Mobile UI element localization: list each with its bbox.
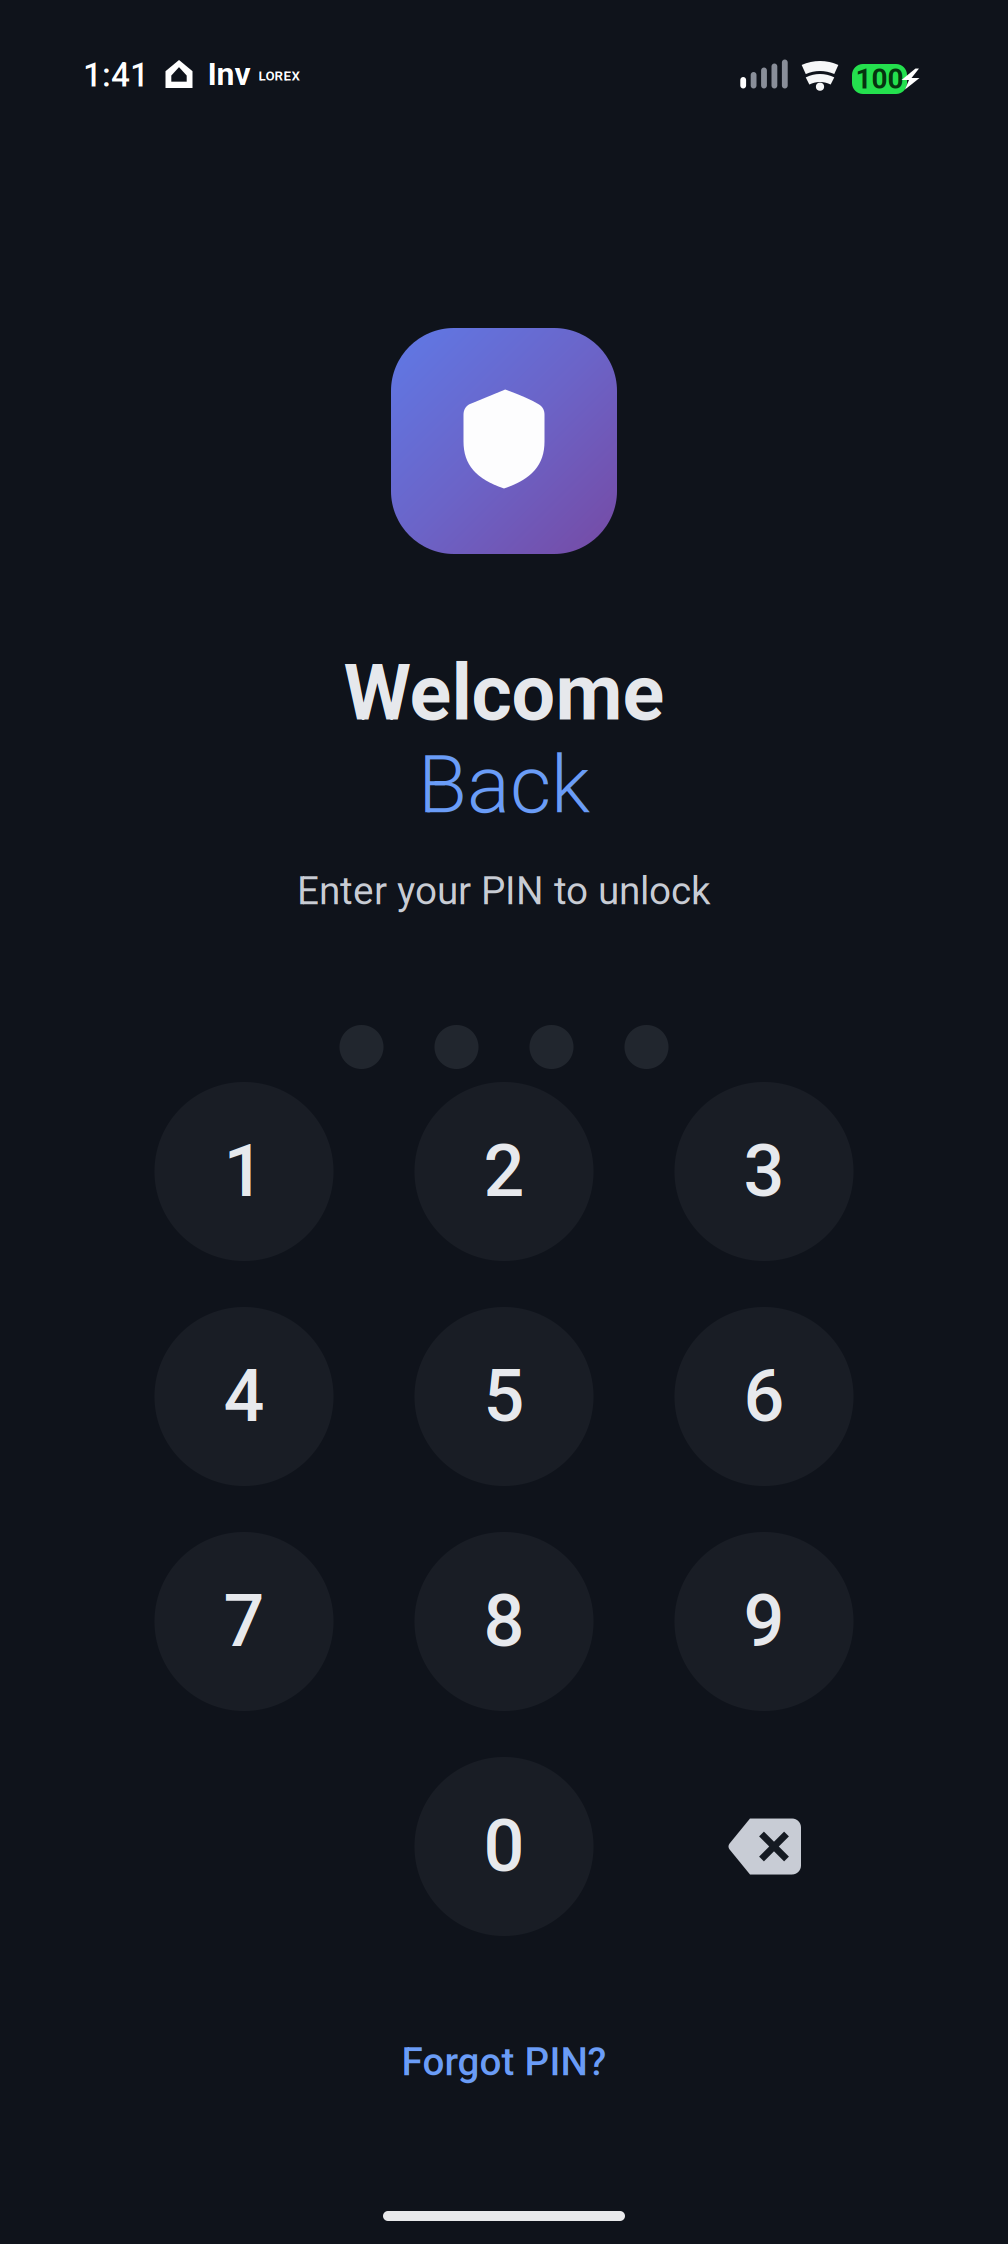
button[interactable]: 5 [414,1307,593,1486]
button[interactable]: 0 [414,1757,593,1936]
staticText: 2 [483,1129,524,1214]
staticText: LOREX [258,68,299,84]
staticText: 3 [743,1129,784,1214]
staticText: 6 [743,1354,784,1439]
button[interactable]: 9 [674,1532,853,1711]
staticText: Back [418,738,590,832]
staticText: 5 [483,1354,524,1439]
staticText: Welcome [343,648,664,738]
staticText: 7 [223,1579,264,1664]
button[interactable]: 1 [154,1082,333,1261]
staticText: 4 [223,1354,264,1439]
staticText: 1:41 [83,55,149,95]
staticText: Inv [207,55,250,93]
staticText: 8 [483,1579,524,1664]
button[interactable]: 2 [414,1082,593,1261]
staticText: Forgot PIN? [401,2039,606,2085]
staticText: 9 [743,1579,784,1664]
button[interactable]: Forgot PIN? [304,2020,704,2104]
staticText: Enter your PIN to unlock [297,868,711,914]
staticText: 1 [223,1129,264,1214]
button[interactable]: 4 [154,1307,333,1486]
button[interactable]: 3 [674,1082,853,1261]
button[interactable]: 7 [154,1532,333,1711]
staticText: 100 [855,63,903,95]
button[interactable]: Delete [674,1757,853,1936]
button[interactable]: 8 [414,1532,593,1711]
button[interactable]: 6 [674,1307,853,1486]
staticText: 0 [483,1804,524,1889]
